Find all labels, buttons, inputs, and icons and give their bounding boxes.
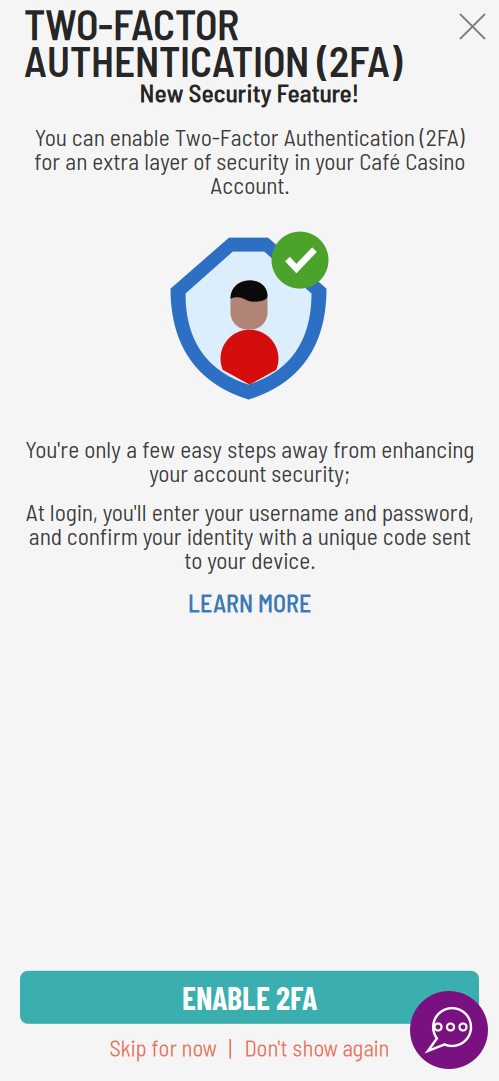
staticText: ENABLE 2FA [182, 978, 317, 1016]
button[interactable]: Skip for now [109, 1028, 216, 1067]
staticText: LEARN MORE [188, 589, 311, 617]
button[interactable]: Close [446, 0, 499, 53]
staticText: At login, you'll enter your username and… [25, 498, 473, 574]
staticText: | [228, 1034, 232, 1061]
staticText: Skip for now [109, 1034, 216, 1061]
staticText: TWO-FACTOR [24, 0, 239, 49]
staticText: AUTHENTICATION (2FA) [24, 36, 402, 85]
button[interactable]: Don't show again [244, 1028, 389, 1067]
staticText: You can enable Two-Factor Authentication… [34, 123, 465, 199]
staticText: Don't show again [244, 1034, 389, 1061]
button[interactable]: LEARN MORE [174, 585, 325, 621]
staticText: You're only a few easy steps away from e… [25, 435, 474, 487]
staticText: New Security Feature! [139, 77, 359, 108]
button[interactable]: Chat support [410, 991, 488, 1069]
button[interactable]: ENABLE 2FA [20, 971, 479, 1024]
